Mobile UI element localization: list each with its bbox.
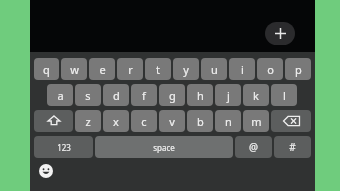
staticText: p bbox=[295, 62, 302, 77]
button[interactable]: a bbox=[47, 84, 73, 106]
button[interactable]: o bbox=[257, 58, 283, 80]
staticText: i bbox=[241, 62, 244, 77]
button[interactable]: m bbox=[243, 110, 269, 132]
staticText: t bbox=[156, 62, 160, 77]
staticText: z bbox=[85, 114, 91, 129]
staticText: c bbox=[141, 114, 147, 129]
staticText: m bbox=[251, 114, 262, 129]
staticText: u bbox=[211, 62, 218, 77]
staticText: k bbox=[253, 88, 259, 103]
staticText: q bbox=[43, 62, 50, 77]
button[interactable]: Emoji bbox=[38, 163, 54, 179]
button[interactable]: f bbox=[131, 84, 157, 106]
staticText: g bbox=[169, 88, 176, 103]
staticText: e bbox=[99, 62, 106, 77]
button[interactable]: e bbox=[89, 58, 115, 80]
button[interactable]: l bbox=[271, 84, 297, 106]
button[interactable]: v bbox=[159, 110, 185, 132]
staticText: h bbox=[197, 88, 204, 103]
staticText: @ bbox=[249, 140, 258, 154]
staticText: w bbox=[70, 62, 79, 77]
button[interactable]: h bbox=[187, 84, 213, 106]
button[interactable]: c bbox=[131, 110, 157, 132]
button[interactable]: s bbox=[75, 84, 101, 106]
staticText: d bbox=[113, 88, 120, 103]
button[interactable]: r bbox=[117, 58, 143, 80]
staticText: n bbox=[225, 114, 232, 129]
button[interactable]: u bbox=[201, 58, 227, 80]
staticText: l bbox=[283, 88, 286, 103]
button[interactable]: Add bbox=[265, 22, 295, 45]
staticText: y bbox=[183, 62, 189, 77]
staticText: f bbox=[142, 88, 146, 103]
button[interactable]: i bbox=[229, 58, 255, 80]
staticText: j bbox=[227, 88, 230, 103]
button[interactable]: b bbox=[187, 110, 213, 132]
staticText: 123 bbox=[57, 142, 71, 153]
button[interactable]: Shift bbox=[34, 110, 73, 132]
button[interactable]: 123 bbox=[34, 136, 93, 158]
button[interactable]: d bbox=[103, 84, 129, 106]
staticText: # bbox=[289, 140, 296, 154]
button[interactable]: z bbox=[75, 110, 101, 132]
button[interactable]: w bbox=[61, 58, 87, 80]
button[interactable]: @ bbox=[235, 136, 272, 158]
staticText: o bbox=[267, 62, 274, 77]
staticText: a bbox=[57, 88, 64, 103]
button[interactable]: t bbox=[145, 58, 171, 80]
button[interactable]: g bbox=[159, 84, 185, 106]
button[interactable]: p bbox=[285, 58, 311, 80]
button[interactable]: y bbox=[173, 58, 199, 80]
staticText: b bbox=[197, 114, 204, 129]
button[interactable]: j bbox=[215, 84, 241, 106]
button[interactable]: space bbox=[95, 136, 233, 158]
staticText: space bbox=[153, 142, 175, 153]
button[interactable]: x bbox=[103, 110, 129, 132]
button[interactable]: Backspace bbox=[271, 110, 311, 132]
button[interactable]: q bbox=[34, 58, 59, 80]
button[interactable]: n bbox=[215, 110, 241, 132]
staticText: v bbox=[169, 114, 175, 129]
button[interactable]: # bbox=[274, 136, 311, 158]
staticText: x bbox=[113, 114, 119, 129]
staticText: s bbox=[85, 88, 91, 103]
button[interactable]: k bbox=[243, 84, 269, 106]
staticText: r bbox=[128, 62, 133, 77]
